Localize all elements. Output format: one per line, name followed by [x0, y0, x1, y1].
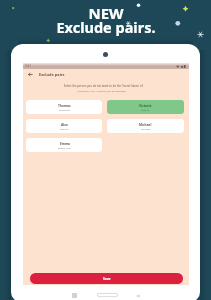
staticText: (Attention, only 1 person can be selecte…: [23, 89, 180, 92]
staticText: alex123: [60, 127, 69, 130]
button[interactable]: Back: [135, 294, 140, 298]
button[interactable]: Thomas: [26, 100, 102, 114]
staticText: tomeky55: [59, 108, 71, 111]
staticText: Save: [103, 277, 111, 281]
button[interactable]: Save: [30, 273, 183, 284]
staticText: Emma: [60, 142, 70, 146]
button[interactable]: Back: [28, 72, 33, 77]
staticText: 9:41: [25, 64, 31, 68]
staticText: Exclude pairs: [39, 72, 65, 77]
button[interactable]: Victoria: [107, 100, 184, 114]
button[interactable]: Emma: [26, 138, 102, 152]
button[interactable]: Michael: [107, 119, 184, 133]
staticText: emma_chill: [58, 146, 71, 149]
staticText: Alex: [61, 123, 68, 127]
staticText: michaelj: [141, 127, 151, 130]
button[interactable]: Alex: [26, 119, 102, 133]
button[interactable]: Home: [97, 293, 118, 297]
staticText: vicky77: [141, 108, 150, 111]
staticText: Victoria: [139, 104, 152, 108]
staticText: Select the person you do not want to be …: [23, 84, 184, 88]
staticText: Exclude pairs.: [56, 17, 156, 37]
staticText: Thomas: [58, 104, 71, 108]
staticText: Michael: [139, 123, 152, 127]
staticText: NEW: [88, 3, 124, 23]
